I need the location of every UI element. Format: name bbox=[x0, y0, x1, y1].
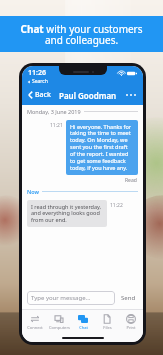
button[interactable]: Files bbox=[95, 310, 119, 334]
staticText: Send bbox=[121, 294, 136, 302]
button[interactable]: More options bbox=[124, 90, 138, 100]
button[interactable]: Type your message... bbox=[27, 291, 115, 305]
staticText: Hi everyone. Thanks for taking the time … bbox=[70, 123, 134, 172]
button[interactable]: Connect bbox=[22, 310, 47, 334]
staticText: Type your message... bbox=[31, 294, 91, 302]
button[interactable]: Chat bbox=[71, 310, 95, 334]
staticText: Search bbox=[32, 78, 48, 85]
button[interactable]: I read through it yesterday, and everyth… bbox=[27, 200, 107, 227]
staticText: Now bbox=[27, 188, 39, 195]
staticText: 11:21 bbox=[50, 122, 63, 129]
button[interactable]: Back bbox=[27, 88, 52, 102]
staticText: I read through it yesterday, and everyth… bbox=[31, 203, 103, 224]
staticText: 11:22 bbox=[110, 202, 123, 209]
staticText: Read bbox=[125, 177, 137, 184]
staticText: Connect bbox=[27, 325, 43, 330]
staticText: 11:26 bbox=[28, 68, 46, 78]
staticText: Paul Goodman bbox=[59, 90, 117, 101]
staticText: Monday, 3 June 2019 bbox=[27, 108, 81, 115]
button[interactable]: Hi everyone. Thanks for taking the time … bbox=[66, 120, 138, 175]
staticText: Computers bbox=[49, 325, 70, 330]
button[interactable]: Send bbox=[119, 292, 138, 304]
staticText: Print bbox=[126, 325, 136, 330]
staticText: Chat with your customers and colleagues. bbox=[20, 22, 143, 47]
staticText: Back bbox=[35, 90, 51, 100]
button[interactable]: Computers bbox=[47, 310, 71, 334]
button[interactable]: Print bbox=[119, 310, 143, 334]
staticText: Files bbox=[103, 325, 112, 330]
staticText: Chat bbox=[79, 325, 88, 330]
